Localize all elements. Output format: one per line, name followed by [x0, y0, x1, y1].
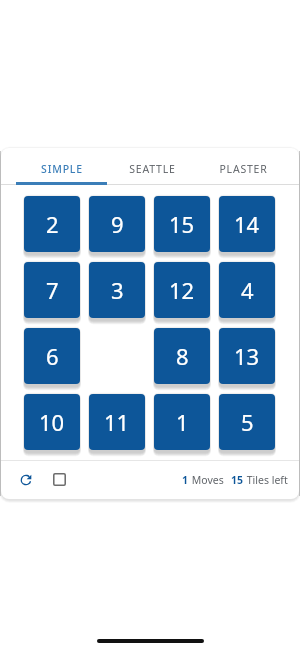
staticText: 10	[39, 407, 65, 437]
button[interactable]: 1	[154, 394, 210, 450]
button[interactable]: 12	[154, 262, 210, 318]
button[interactable]: 11	[89, 394, 145, 450]
staticText: 1	[182, 473, 189, 487]
button[interactable]: 4	[219, 262, 275, 318]
button[interactable]: PLASTER	[198, 148, 289, 185]
staticText: 1	[176, 407, 189, 437]
button[interactable]: 9	[89, 196, 145, 252]
staticText: 15	[231, 473, 244, 487]
staticText: Moves	[189, 473, 224, 487]
staticText: 13	[234, 341, 260, 371]
staticText: 4	[241, 275, 254, 305]
staticText: 7	[46, 275, 59, 305]
staticText: SEATTLE	[129, 162, 176, 176]
staticText: 3	[111, 275, 124, 305]
button[interactable]: 10	[24, 394, 80, 450]
button[interactable]: 6	[24, 328, 80, 384]
button[interactable]: 13	[219, 328, 275, 384]
button[interactable]: Reset puzzle	[13, 467, 38, 492]
staticText: Tiles left	[244, 473, 288, 487]
staticText: 11	[104, 407, 130, 437]
staticText: SIMPLE	[41, 162, 83, 176]
button[interactable]: Toggle numbers	[47, 467, 72, 492]
button[interactable]: 7	[24, 262, 80, 318]
button[interactable]: SEATTLE	[107, 148, 198, 185]
button[interactable]: SIMPLE	[16, 148, 107, 185]
button[interactable]: 14	[219, 196, 275, 252]
button[interactable]: 2	[24, 196, 80, 252]
staticText: 2	[46, 209, 59, 239]
button[interactable]: 3	[89, 262, 145, 318]
staticText: 8	[176, 341, 189, 371]
staticText: 14	[234, 209, 260, 239]
staticText: PLASTER	[219, 162, 268, 176]
staticText: 12	[169, 275, 195, 305]
button[interactable]: 5	[219, 394, 275, 450]
button[interactable]: 8	[154, 328, 210, 384]
staticText: 6	[46, 341, 59, 371]
staticText: 5	[241, 407, 254, 437]
staticText: 9	[111, 209, 124, 239]
staticText: 15	[169, 209, 195, 239]
button[interactable]: 15	[154, 196, 210, 252]
